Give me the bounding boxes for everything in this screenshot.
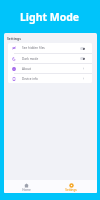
staticText: About bbox=[22, 67, 31, 71]
staticText: Settings bbox=[7, 36, 21, 41]
button[interactable]: Device info bbox=[8, 74, 92, 83]
button[interactable]: Home bbox=[19, 183, 34, 192]
staticText: See hidden files bbox=[22, 46, 45, 50]
button[interactable]: About bbox=[8, 64, 92, 73]
staticText: Light Mode bbox=[20, 10, 80, 24]
button[interactable]: Settings bbox=[62, 183, 80, 192]
button[interactable]: See hidden files bbox=[8, 43, 92, 53]
staticText: Settings bbox=[65, 188, 77, 192]
button[interactable]: Dark mode bbox=[8, 54, 92, 63]
staticText: Device info bbox=[22, 77, 38, 81]
staticText: Home bbox=[22, 188, 31, 192]
staticText: Dark mode bbox=[22, 57, 39, 61]
